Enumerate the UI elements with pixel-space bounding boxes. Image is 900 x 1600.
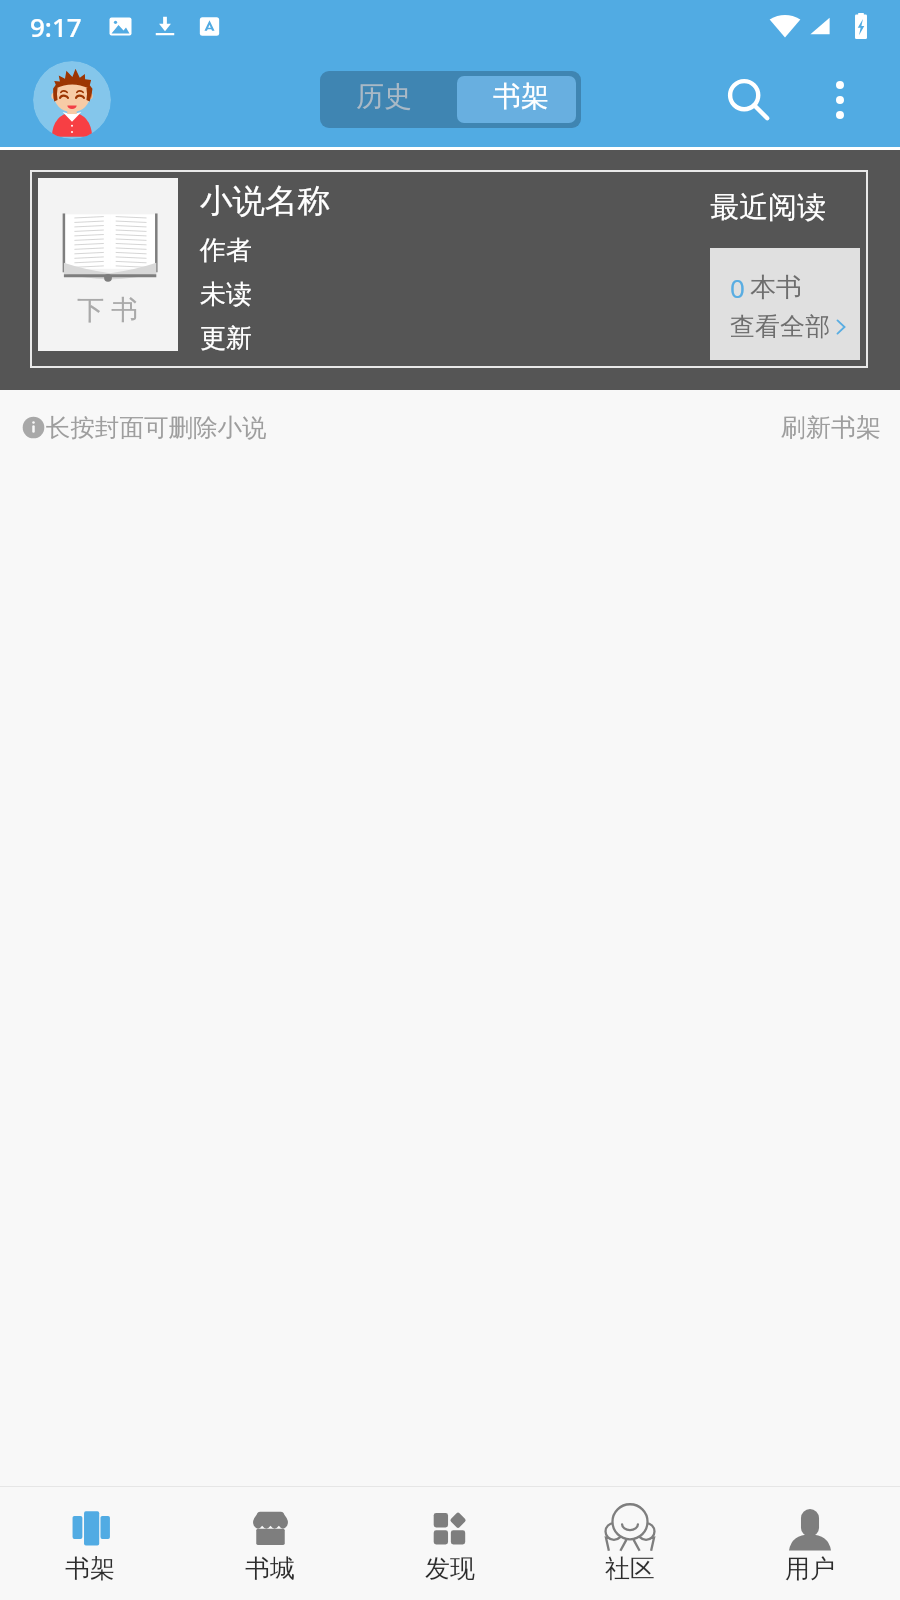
staticText: 更新 <box>200 322 252 355</box>
staticText: 刷新书架 <box>781 412 881 443</box>
staticText: 未读 <box>200 278 252 311</box>
button[interactable]: 书架 <box>0 1487 180 1600</box>
button[interactable]: 用户 <box>720 1487 900 1600</box>
button[interactable]: 0 <box>710 248 860 360</box>
staticText: 长按封面可删除小说 <box>46 412 267 443</box>
staticText: 查看全部 <box>730 311 830 342</box>
button[interactable]: More options <box>812 72 868 128</box>
staticText: 发现 <box>425 1553 475 1584</box>
button[interactable]: 社区 <box>540 1487 720 1600</box>
staticText: 书架 <box>65 1553 115 1584</box>
button[interactable]: 历史 <box>325 76 457 123</box>
staticText: 9:17 <box>30 9 82 44</box>
button[interactable]: 下 书 <box>30 170 868 368</box>
button[interactable]: 书城 <box>180 1487 360 1600</box>
staticText: 小说名称 <box>200 181 330 222</box>
button[interactable]: Profile <box>33 61 111 139</box>
button[interactable]: 书架 <box>457 76 576 123</box>
staticText: 最近阅读 <box>710 189 826 226</box>
staticText: 历史 <box>356 79 412 114</box>
staticText: 用户 <box>785 1553 835 1584</box>
staticText: 本书 <box>750 271 802 304</box>
staticText: 书架 <box>493 79 549 114</box>
staticText: 作者 <box>200 234 252 267</box>
staticText: 书城 <box>245 1553 295 1584</box>
staticText: 下 书 <box>77 290 139 327</box>
staticText: 0 <box>730 270 745 305</box>
button[interactable]: Search <box>717 64 789 136</box>
staticText: 社区 <box>605 1553 655 1584</box>
button[interactable]: 刷新书架 <box>781 412 881 443</box>
button[interactable]: 发现 <box>360 1487 540 1600</box>
